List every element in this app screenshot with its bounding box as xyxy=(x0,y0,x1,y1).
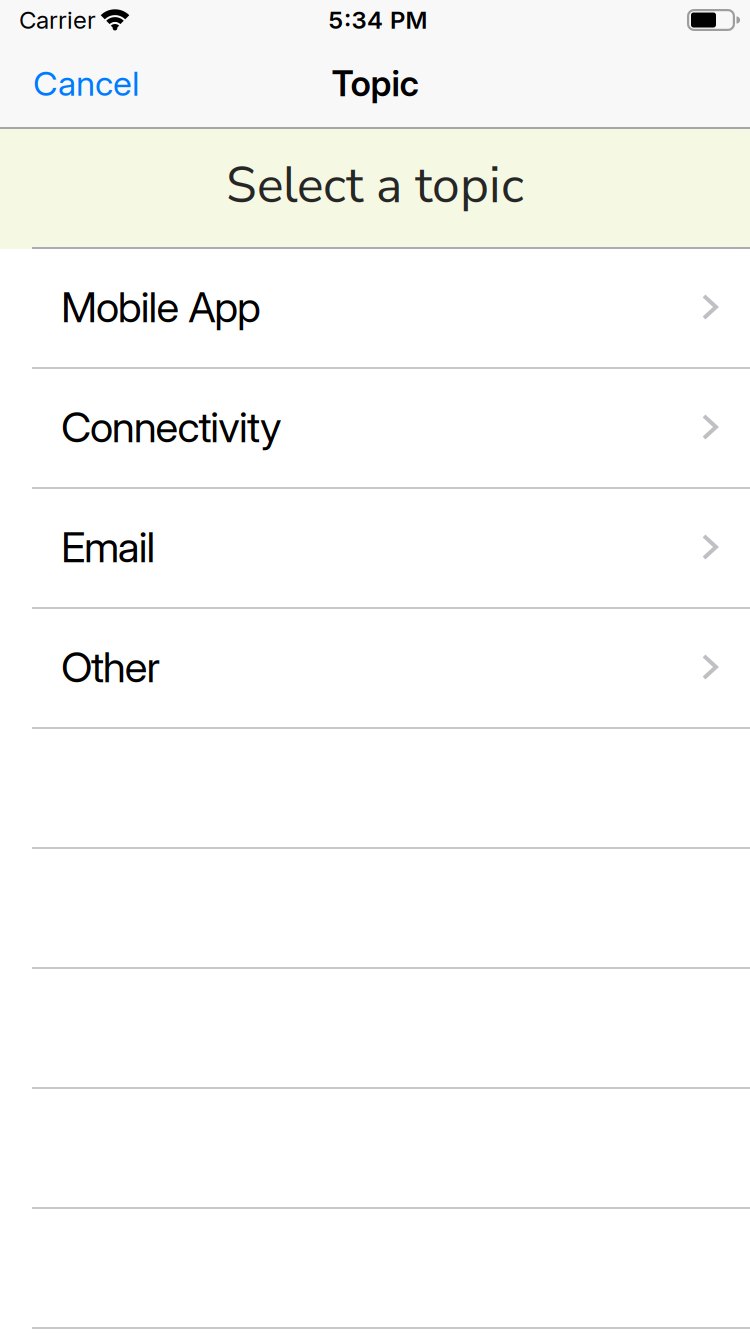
staticText: Mobile App xyxy=(61,282,261,332)
staticText: 5:34 PM xyxy=(328,5,427,34)
staticText: Select a topic xyxy=(226,152,524,220)
button[interactable]: Other xyxy=(0,609,750,729)
button[interactable]: Email xyxy=(0,489,750,609)
staticText: Other xyxy=(61,642,161,692)
staticText: Cancel xyxy=(33,63,139,104)
staticText: Topic xyxy=(331,62,418,105)
button[interactable]: Mobile App xyxy=(0,249,750,369)
staticText: Carrier xyxy=(19,5,96,34)
staticText: Connectivity xyxy=(61,402,282,452)
button[interactable]: Cancel xyxy=(0,53,139,114)
button[interactable]: Connectivity xyxy=(0,369,750,489)
staticText: Email xyxy=(61,522,156,572)
